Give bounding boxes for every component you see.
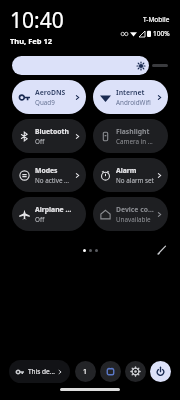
button[interactable]: Alarm bbox=[93, 158, 168, 192]
button[interactable]: Device controls bbox=[93, 197, 168, 231]
staticText: Bluetooth bbox=[35, 127, 69, 136]
staticText: T-Mobile bbox=[143, 15, 170, 24]
staticText: Thu, Feb 12 bbox=[10, 36, 53, 46]
button[interactable]: AeroDNS bbox=[12, 80, 86, 114]
staticText: This device ... bbox=[28, 367, 57, 376]
button[interactable]: Security bbox=[100, 361, 121, 382]
staticText: 1 bbox=[83, 367, 88, 377]
staticText: Off bbox=[35, 137, 45, 146]
staticText: Off bbox=[35, 215, 45, 224]
staticText: Alarm bbox=[116, 166, 137, 175]
button[interactable]: This device ... bbox=[9, 360, 70, 383]
staticText: Modes bbox=[35, 166, 58, 175]
button[interactable]: Settings bbox=[125, 361, 146, 382]
button[interactable]: Modes bbox=[12, 158, 86, 192]
staticText: Flashlight bbox=[116, 127, 150, 136]
button[interactable]: Power bbox=[150, 361, 171, 382]
staticText: Internet bbox=[116, 88, 145, 97]
staticText: AndroidWifi bbox=[116, 98, 151, 107]
staticText: 100% bbox=[153, 29, 170, 38]
button[interactable]: Internet bbox=[93, 80, 168, 114]
staticText: AeroDNS bbox=[35, 88, 66, 97]
staticText: No alarm set bbox=[116, 176, 154, 185]
staticText: Device controls bbox=[116, 205, 156, 214]
staticText: Airplane mode bbox=[35, 205, 74, 214]
button[interactable]: Brightness bbox=[12, 56, 149, 75]
button[interactable]: users bbox=[75, 361, 96, 382]
staticText: Quad9 bbox=[35, 98, 55, 107]
staticText: Unavailable bbox=[116, 215, 151, 224]
staticText: No active mode bbox=[35, 176, 74, 185]
button[interactable]: Bluetooth bbox=[12, 119, 86, 153]
button[interactable]: Edit tiles bbox=[155, 243, 169, 257]
staticText: Camera in use bbox=[116, 137, 156, 146]
button[interactable]: Airplane mode bbox=[12, 197, 86, 231]
staticText: 10:40 bbox=[10, 6, 64, 35]
button[interactable]: Flashlight bbox=[93, 119, 168, 153]
